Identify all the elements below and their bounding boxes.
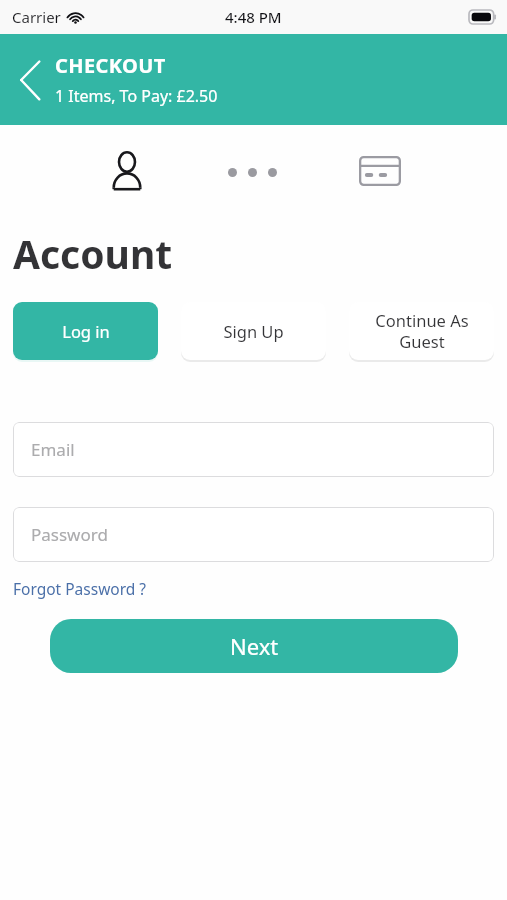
staticText: Forgot Password ?: [13, 578, 147, 599]
staticText: 1 Items, To Pay: £2.50: [55, 85, 218, 107]
staticText: 4:48 PM: [225, 7, 282, 27]
staticText: Next: [230, 631, 279, 661]
staticText: Continue As Guest: [375, 309, 469, 353]
button[interactable]: Account step: [103, 147, 151, 195]
staticText: Log in: [62, 320, 110, 342]
button[interactable]: Back: [6, 56, 54, 104]
staticText: Account: [13, 227, 173, 280]
button[interactable]: Sign Up: [181, 302, 326, 360]
button[interactable]: Payment step: [356, 149, 404, 193]
button[interactable]: Continue As Guest: [349, 302, 494, 360]
button[interactable]: Password: [13, 507, 494, 562]
button[interactable]: Email: [13, 422, 494, 477]
staticText: Email: [31, 438, 75, 461]
button[interactable]: Next: [50, 619, 458, 673]
staticText: Carrier: [12, 7, 61, 27]
button[interactable]: Log in: [13, 302, 158, 360]
button[interactable]: Forgot Password ?: [13, 578, 147, 599]
staticText: Password: [31, 523, 108, 546]
staticText: Sign Up: [223, 320, 284, 342]
staticText: CHECKOUT: [55, 52, 166, 79]
